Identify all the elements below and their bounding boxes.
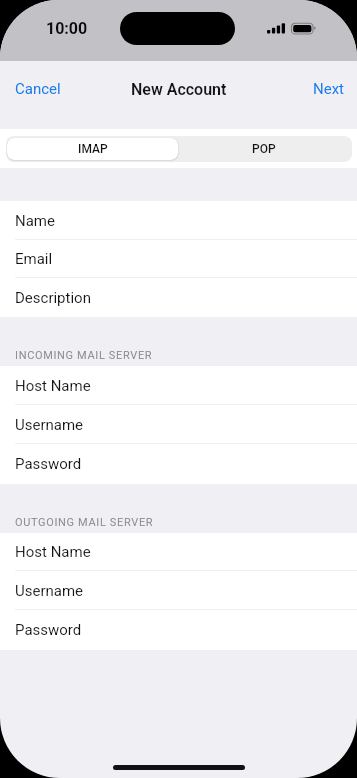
staticText: Username — [15, 582, 84, 600]
staticText: Name — [15, 212, 55, 230]
button[interactable]: Description — [0, 278, 357, 317]
staticText: Host Name — [15, 543, 91, 561]
staticText: Cancel — [15, 80, 61, 98]
staticText: POP — [252, 142, 276, 156]
staticText: OUTGOING MAIL SERVER — [15, 516, 154, 529]
button[interactable]: Password — [0, 610, 357, 650]
staticText: Next — [313, 80, 345, 98]
button[interactable]: IMAP — [7, 138, 178, 160]
staticText: Username — [15, 416, 84, 434]
staticText: 10:00 — [46, 19, 88, 38]
staticText: Password — [15, 621, 82, 639]
other: Signal and battery status — [265, 22, 319, 36]
staticText: New Account — [131, 80, 227, 99]
button[interactable]: Password — [0, 444, 357, 484]
staticText: Email — [15, 250, 53, 268]
button[interactable]: Username — [0, 571, 357, 610]
button[interactable]: Next — [298, 74, 357, 104]
button[interactable]: POP — [178, 138, 349, 160]
button[interactable]: Username — [0, 405, 357, 444]
staticText: Description — [15, 289, 91, 307]
staticText: Password — [15, 455, 82, 473]
button[interactable]: Cancel — [0, 74, 76, 104]
staticText: Host Name — [15, 377, 91, 395]
button[interactable]: Host Name — [0, 366, 357, 405]
button[interactable]: Name — [0, 201, 357, 240]
button[interactable]: Host Name — [0, 533, 357, 571]
button[interactable]: Email — [0, 240, 357, 278]
staticText: IMAP — [78, 142, 108, 156]
staticText: INCOMING MAIL SERVER — [15, 349, 153, 362]
